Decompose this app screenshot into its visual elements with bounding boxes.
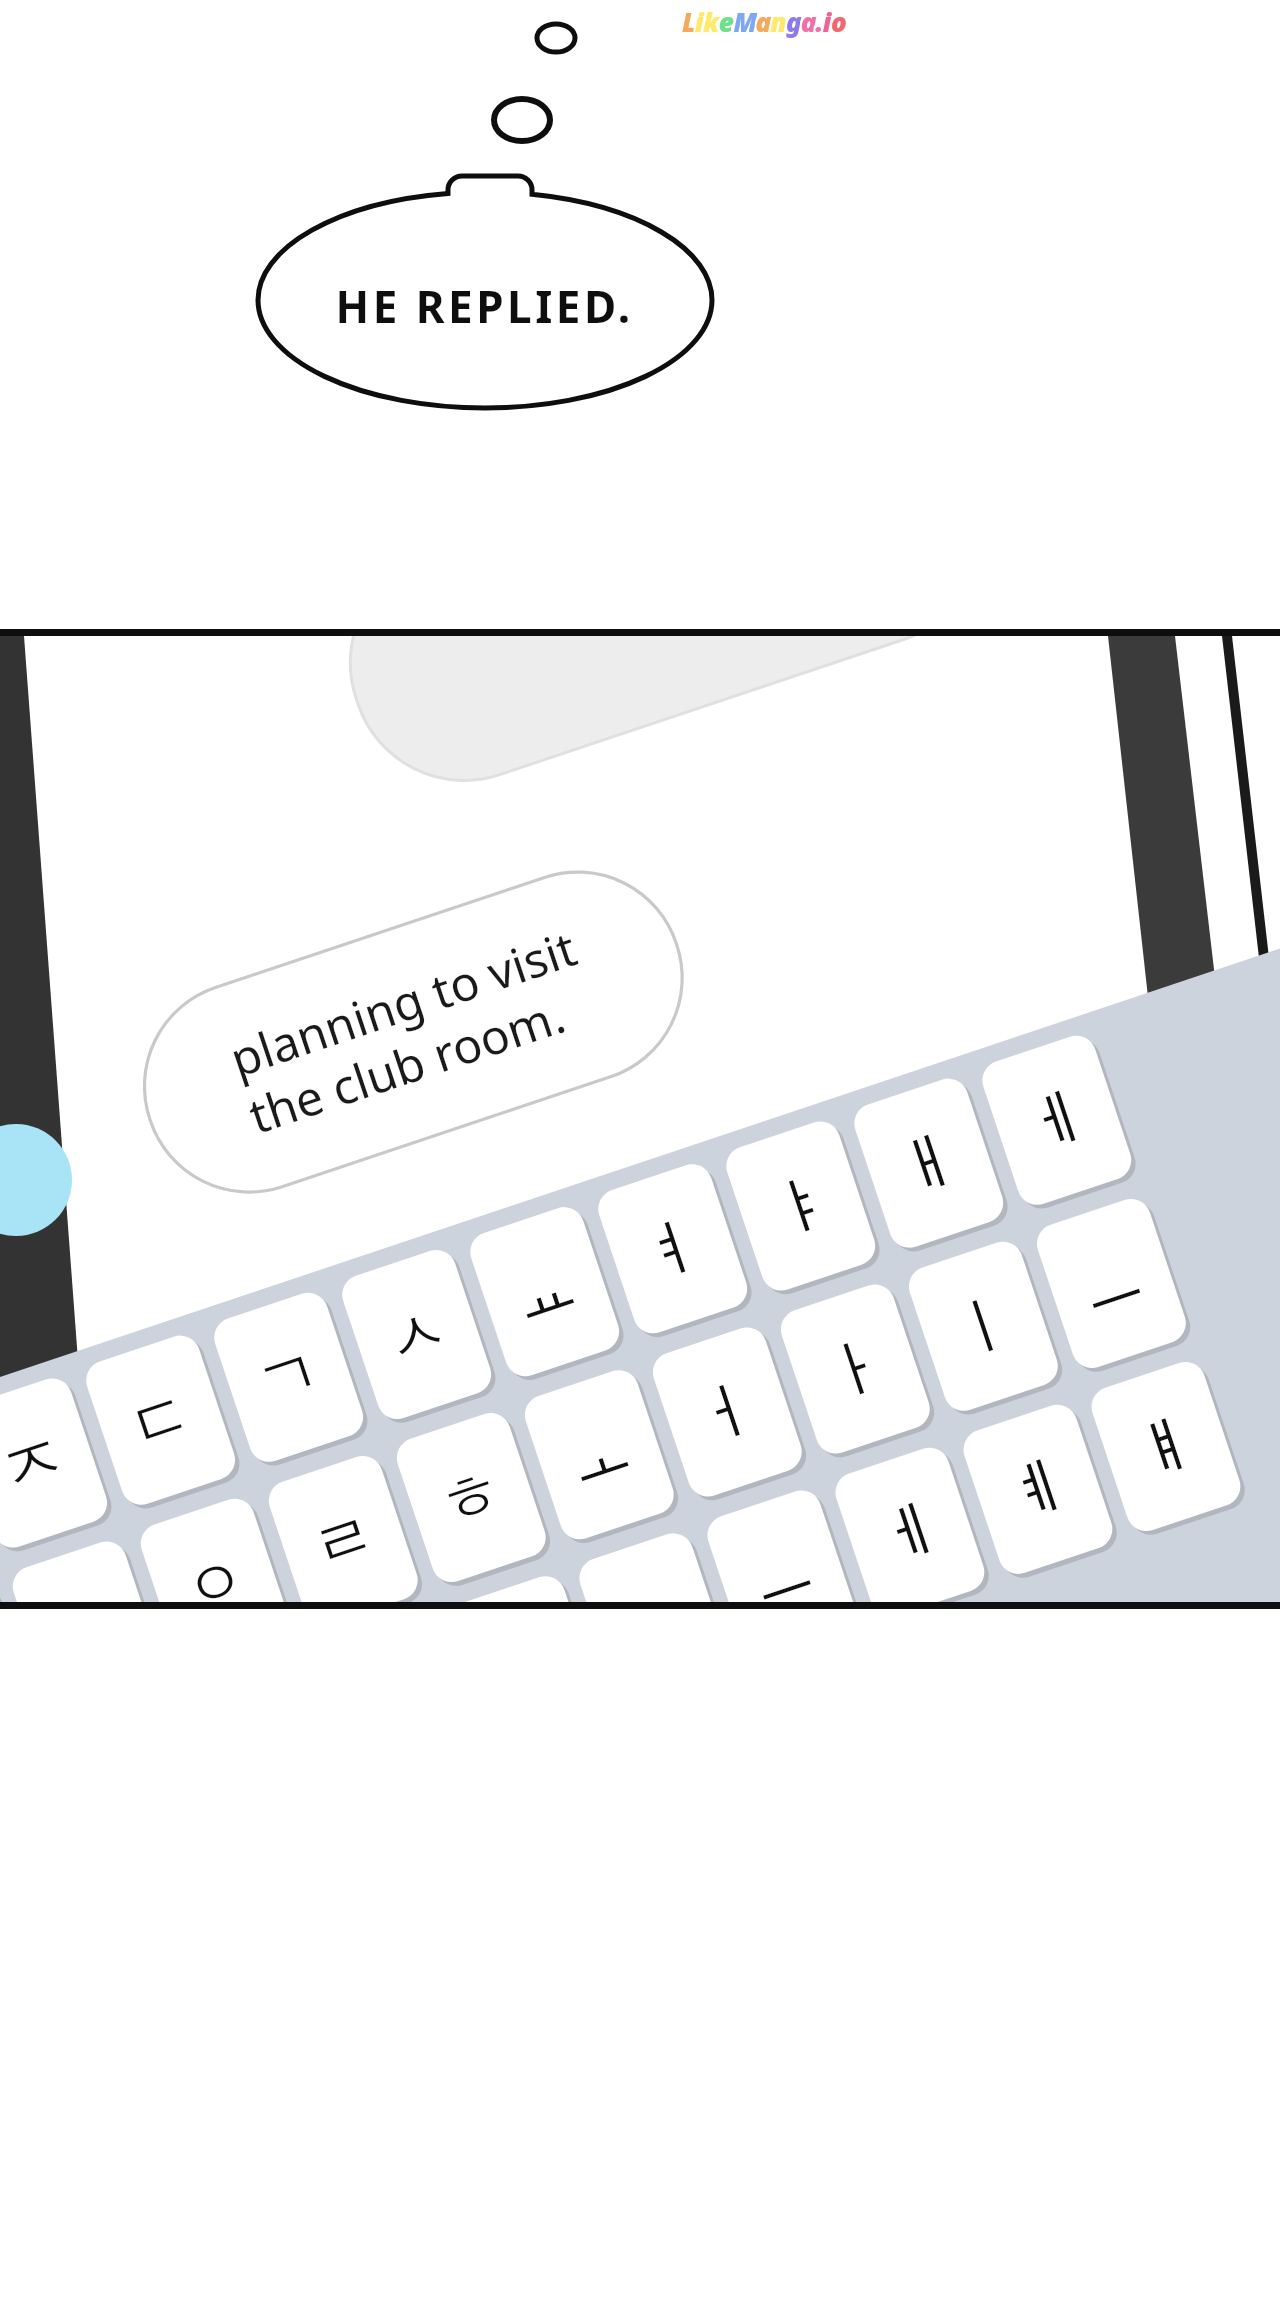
button[interactable]: Comic page: HE REPLIED. [0,0,1280,2319]
other: Comic page: HE REPLIED. [0,0,1280,2319]
